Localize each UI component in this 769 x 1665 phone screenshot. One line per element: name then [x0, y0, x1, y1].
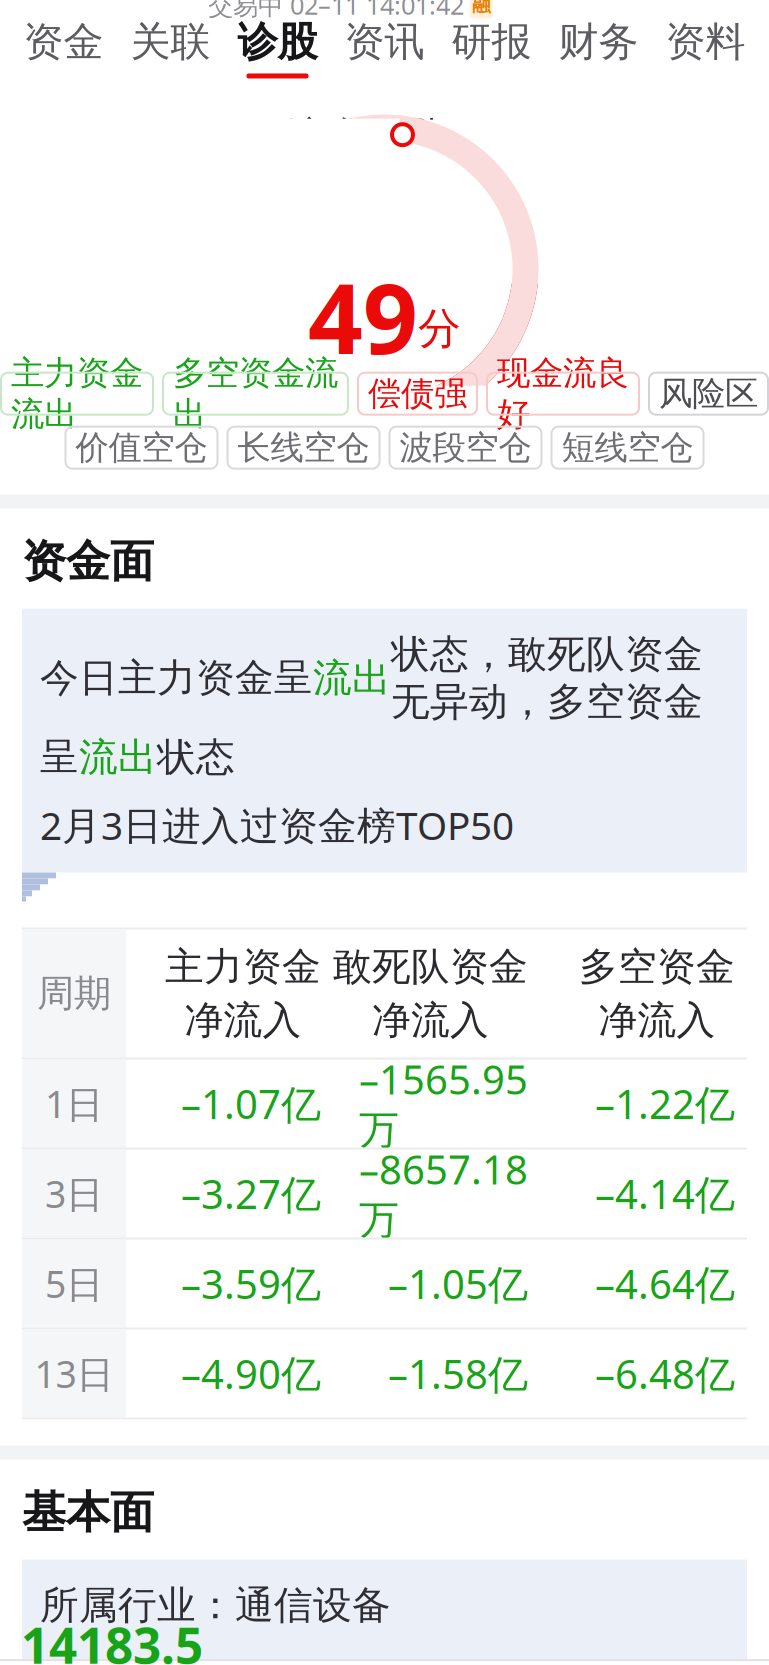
staticText: –3.59亿: [181, 1257, 321, 1310]
button[interactable]: 风险区: [649, 373, 768, 415]
staticText: 波段空仓: [399, 427, 531, 468]
staticText: 资金: [23, 17, 103, 66]
staticText: 流出: [313, 654, 391, 702]
staticText: –8657.18万: [359, 1142, 528, 1245]
button[interactable]: 多空资金流出: [163, 373, 348, 415]
staticText: 诊股: [237, 17, 317, 66]
staticText: 长线空仓: [237, 427, 369, 468]
button[interactable]: 诊股: [224, 12, 331, 84]
button[interactable]: 评分说明: [458, 124, 485, 151]
staticText: 交易中 02–11 14:01:42: [208, 0, 464, 22]
staticText: 多空资金流出: [173, 353, 338, 435]
staticText: 14183.50: [21, 1612, 203, 1665]
staticText: 偿债强: [368, 373, 467, 414]
staticText: 短线空仓: [561, 427, 693, 468]
staticText: 5日: [45, 1259, 103, 1308]
staticText: 资金面: [22, 535, 154, 589]
staticText: –3.27亿: [181, 1167, 321, 1220]
button[interactable]: ▴: [0, 1612, 208, 1665]
staticText: 分: [418, 302, 461, 355]
staticText: –1565.95万: [359, 1052, 528, 1155]
staticText: 49: [308, 253, 418, 380]
staticText: 状态: [157, 734, 235, 781]
staticText: 融: [472, 0, 491, 16]
button[interactable]: 资讯: [331, 12, 438, 84]
staticText: ?: [466, 120, 477, 154]
staticText: 今日主力资金呈: [40, 654, 313, 702]
staticText: –1.05亿: [388, 1257, 528, 1310]
staticText: –4.64亿: [595, 1257, 735, 1310]
button[interactable]: 波段空仓: [389, 427, 541, 469]
staticText: 基本面: [22, 1486, 154, 1540]
staticText: 2月3日进入过资金榜TOP50: [40, 799, 514, 850]
staticText: –1.58亿: [388, 1347, 528, 1400]
staticText: 3日: [45, 1169, 103, 1218]
staticText: –4.90亿: [181, 1347, 321, 1400]
staticText: 主力资金: [165, 943, 321, 991]
staticText: 财务: [558, 17, 638, 66]
staticText: 净流入: [598, 997, 715, 1044]
button[interactable]: 财务: [545, 12, 652, 84]
staticText: 状态，敢死队资金无异动，多空资金: [391, 631, 703, 726]
staticText: 综合评分: [284, 112, 448, 163]
button[interactable]: 价值空仓: [65, 427, 217, 469]
button[interactable]: 资料: [652, 12, 759, 84]
button[interactable]: 短线空仓: [551, 427, 703, 469]
staticText: –1.07亿: [181, 1077, 321, 1130]
staticText: 风险区: [659, 373, 758, 414]
staticText: –4.14亿: [595, 1167, 735, 1220]
staticText: 所属行业：通信设备: [40, 1582, 391, 1629]
staticText: 流出: [79, 734, 157, 781]
button[interactable]: 长线空仓: [227, 427, 379, 469]
staticText: –6.48亿: [595, 1347, 735, 1400]
staticText: 研报: [451, 17, 531, 66]
staticText: –1.22亿: [595, 1077, 735, 1130]
staticText: 周期: [37, 971, 111, 1016]
staticText: 价值空仓: [75, 427, 207, 468]
staticText: 资料: [665, 17, 745, 66]
staticText: 1日: [45, 1079, 103, 1128]
button[interactable]: 研报: [438, 12, 545, 84]
button[interactable]: 关联: [117, 12, 224, 84]
staticText: 多空资金: [579, 943, 735, 991]
button[interactable]: 现金流良好: [487, 373, 639, 415]
staticText: 13日: [34, 1349, 113, 1398]
staticText: 净流入: [184, 997, 301, 1044]
button[interactable]: 资金: [10, 12, 117, 84]
staticText: 净流入: [372, 997, 489, 1044]
staticText: 现金流良好: [497, 353, 629, 435]
staticText: ▴: [5, 1656, 17, 1665]
staticText: 资讯: [344, 17, 424, 66]
button[interactable]: 主力资金流出: [1, 373, 153, 415]
staticText: 敢死队资金: [333, 943, 528, 991]
button[interactable]: 偿债强: [358, 373, 477, 415]
staticText: 呈: [40, 734, 79, 781]
staticText: 关联: [130, 17, 210, 66]
staticText: 主力资金流出: [11, 353, 143, 435]
